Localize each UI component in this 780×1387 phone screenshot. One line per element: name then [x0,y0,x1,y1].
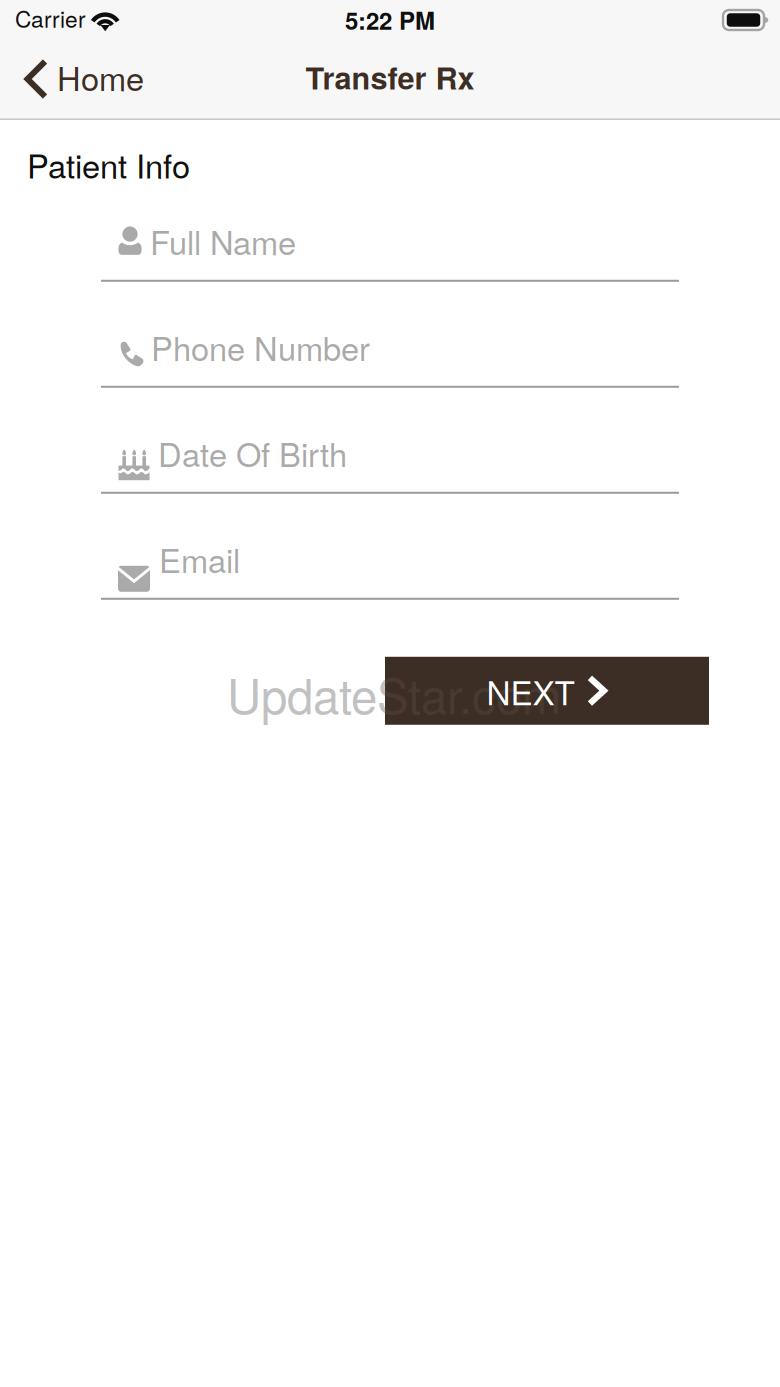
staticText: Date Of Birth [158,429,347,476]
staticText: Email [159,535,240,582]
staticText: Phone Number [151,323,370,370]
button[interactable]: NEXT [385,657,709,725]
staticText: 5:22 PM [345,3,435,37]
button[interactable]: Home [0,43,158,111]
staticText: Full Name [150,217,296,264]
staticText: Patient Info [27,141,190,188]
staticText: UpdateStar.com [227,660,561,728]
staticText: NEXT [486,667,574,715]
staticText: Transfer Rx [305,55,474,99]
staticText: Carrier [15,2,86,34]
staticText: UpdateStar.com [227,660,561,728]
staticText: Home [57,54,144,100]
